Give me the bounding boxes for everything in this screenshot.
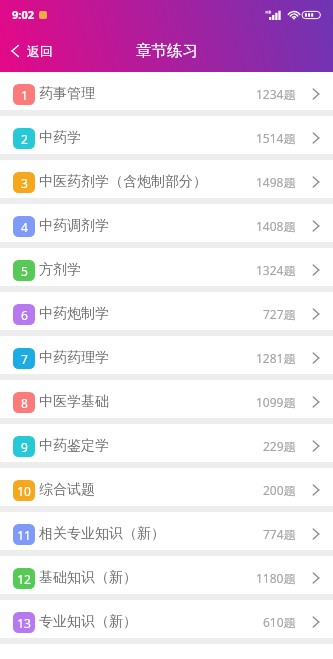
staticText: 中医药剂学（含炮制部分） — [39, 173, 207, 191]
button[interactable]: 12 — [0, 556, 333, 600]
button[interactable]: 11 — [0, 512, 333, 556]
staticText: 10 — [17, 483, 31, 499]
staticText: 1408题 — [256, 218, 296, 234]
staticText: 610题 — [263, 614, 296, 630]
staticText: 基础知识（新） — [39, 569, 137, 587]
staticText: 3 — [21, 175, 28, 191]
button[interactable]: 返回 — [0, 35, 65, 67]
staticText: 1281题 — [256, 350, 296, 366]
button[interactable]: 1 — [0, 72, 333, 116]
staticText: 章节练习 — [136, 41, 198, 61]
other: Battery — [302, 10, 321, 20]
button[interactable]: 7 — [0, 336, 333, 380]
staticText: 7 — [21, 351, 28, 367]
staticText: 中药学 — [39, 129, 81, 147]
staticText: 1180题 — [256, 570, 296, 586]
staticText: 1 — [21, 87, 28, 103]
staticText: 返回 — [27, 43, 53, 59]
button[interactable]: 5 — [0, 248, 333, 292]
staticText: 中药药理学 — [39, 349, 109, 367]
staticText: 1324题 — [256, 262, 296, 278]
staticText: 5 — [21, 263, 28, 279]
staticText: 727题 — [263, 306, 296, 322]
staticText: 中药鉴定学 — [39, 437, 109, 455]
button[interactable]: 8 — [0, 380, 333, 424]
staticText: 11 — [17, 527, 31, 543]
button[interactable]: 4 — [0, 204, 333, 248]
staticText: 200题 — [263, 482, 296, 498]
staticText: 专业知识（新） — [39, 613, 137, 631]
staticText: 中药炮制学 — [39, 305, 109, 323]
staticText: 1234题 — [256, 86, 296, 102]
button[interactable]: 2 — [0, 116, 333, 160]
staticText: 相关专业知识（新） — [39, 525, 165, 543]
button[interactable]: 10 — [0, 468, 333, 512]
staticText: 1498题 — [256, 174, 296, 190]
staticText: 9 — [21, 439, 28, 455]
staticText: 方剂学 — [39, 261, 81, 279]
button[interactable]: 13 — [0, 600, 333, 644]
staticText: 774题 — [263, 526, 296, 542]
staticText: 6 — [21, 307, 28, 323]
staticText: 9:02 — [12, 7, 34, 22]
staticText: 1099题 — [256, 394, 296, 410]
staticText: 229题 — [263, 438, 296, 454]
staticText: 8 — [21, 395, 28, 411]
button[interactable]: 9 — [0, 424, 333, 468]
staticText: 4 — [21, 219, 28, 235]
staticText: 综合试题 — [39, 481, 95, 499]
button[interactable]: 6 — [0, 292, 333, 336]
other: Wi-Fi — [288, 10, 300, 20]
staticText: 2 — [21, 131, 28, 147]
staticText: 中药调剂学 — [39, 217, 109, 235]
other: Cellular signal — [266, 10, 281, 20]
staticText: 12 — [17, 571, 31, 587]
staticText: 药事管理 — [39, 85, 95, 103]
staticText: 13 — [17, 615, 31, 631]
staticText: 中医学基础 — [39, 393, 109, 411]
staticText: 1514题 — [256, 130, 296, 146]
button[interactable]: 3 — [0, 160, 333, 204]
